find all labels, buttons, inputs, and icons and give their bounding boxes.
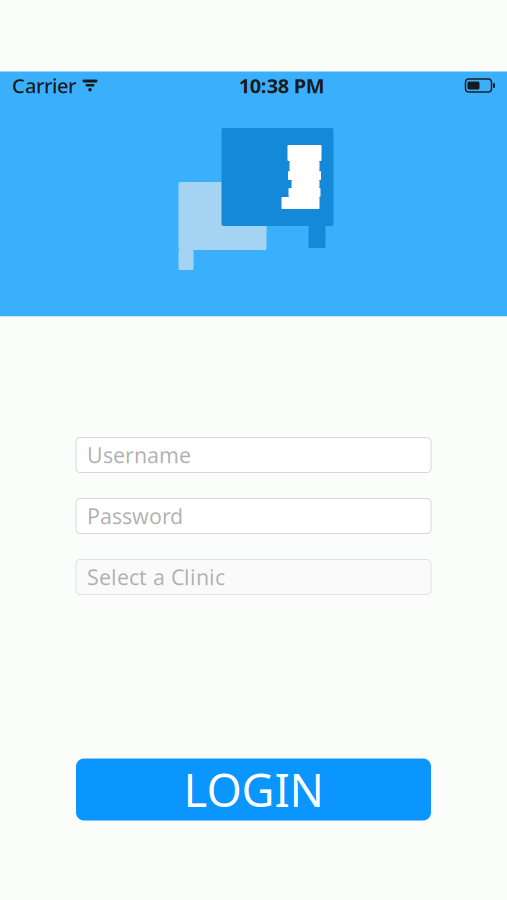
button[interactable]: Select a Clinic — [76, 559, 431, 594]
staticText: Username — [87, 441, 191, 469]
staticText: 10:38 PM — [239, 72, 325, 99]
staticText: Password — [87, 502, 183, 530]
button[interactable]: LOGIN — [76, 758, 431, 820]
button[interactable]: Username — [76, 437, 431, 472]
button[interactable]: Password — [76, 498, 431, 533]
staticText: LOGIN — [183, 759, 323, 820]
staticText: Carrier — [12, 72, 76, 99]
staticText: Select a Clinic — [87, 563, 225, 591]
